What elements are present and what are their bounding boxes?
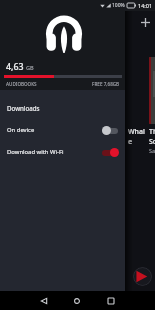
staticText: So bbox=[149, 137, 155, 147]
button[interactable]: MOBY bbox=[127, 57, 145, 124]
staticText: Downloads bbox=[7, 104, 40, 112]
button[interactable]: Back bbox=[33, 291, 55, 310]
staticText: 14:01 bbox=[138, 2, 153, 9]
button[interactable]: Recent apps bbox=[100, 291, 122, 310]
button[interactable]: Downloads bbox=[0, 96, 125, 119]
button[interactable]: On device bbox=[0, 119, 125, 141]
button[interactable] bbox=[149, 57, 155, 124]
staticText: AUDIOBOOKS bbox=[6, 81, 37, 87]
staticText: 4,63 bbox=[6, 61, 24, 73]
staticText: Th bbox=[149, 127, 155, 137]
staticText: 100% bbox=[112, 2, 125, 9]
button[interactable]: Add bbox=[136, 13, 154, 31]
staticText: GB bbox=[26, 64, 34, 72]
button[interactable]: Download with Wi-Fi bbox=[0, 141, 125, 163]
staticText: FREE 7,68GB bbox=[92, 81, 120, 87]
staticText: Whale bbox=[128, 127, 146, 147]
staticText: On device bbox=[7, 126, 35, 134]
button[interactable]: Home bbox=[66, 291, 88, 310]
staticText: Sa bbox=[149, 147, 155, 154]
button[interactable]: Play bbox=[133, 267, 152, 286]
staticText: Download with Wi-Fi bbox=[7, 148, 64, 156]
